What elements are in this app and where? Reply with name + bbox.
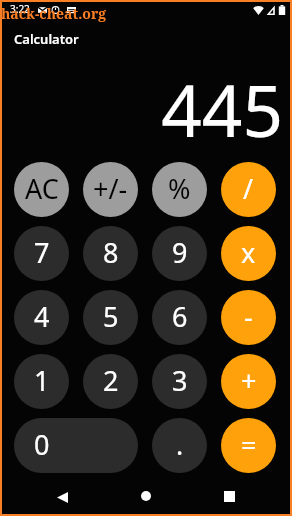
- button[interactable]: /: [221, 162, 276, 217]
- button[interactable]: Home: [130, 480, 162, 512]
- staticText: 6: [172, 298, 188, 335]
- button[interactable]: +/-: [83, 162, 138, 217]
- staticText: x: [241, 234, 256, 271]
- staticText: 4: [34, 298, 50, 335]
- button[interactable]: Back: [46, 481, 78, 513]
- staticText: 0: [34, 426, 50, 463]
- button[interactable]: 0: [14, 418, 138, 473]
- button[interactable]: 5: [83, 290, 138, 345]
- staticText: %: [168, 170, 191, 207]
- staticText: +/-: [93, 170, 128, 207]
- staticText: AC: [25, 170, 59, 207]
- button[interactable]: %: [152, 162, 207, 217]
- staticText: 3:22: [10, 2, 30, 16]
- staticText: 445: [161, 61, 283, 158]
- button[interactable]: 3: [152, 354, 207, 409]
- staticText: 1: [34, 362, 50, 399]
- button[interactable]: 8: [83, 226, 138, 281]
- staticText: =: [241, 426, 257, 463]
- staticText: 7: [34, 234, 50, 271]
- button[interactable]: 9: [152, 226, 207, 281]
- button[interactable]: Recent apps: [213, 480, 245, 512]
- staticText: 5: [103, 298, 119, 335]
- button[interactable]: 4: [14, 290, 69, 345]
- staticText: 9: [172, 234, 188, 271]
- staticText: 3: [172, 362, 188, 399]
- button[interactable]: AC: [14, 162, 69, 217]
- button[interactable]: x: [221, 226, 276, 281]
- staticText: hack-cheat.org: [1, 4, 107, 23]
- staticText: +: [241, 362, 257, 399]
- button[interactable]: 2: [83, 354, 138, 409]
- staticText: .: [176, 426, 184, 463]
- staticText: 2: [103, 362, 119, 399]
- staticText: Calculator: [14, 30, 79, 48]
- staticText: -: [244, 298, 253, 335]
- button[interactable]: 1: [14, 354, 69, 409]
- button[interactable]: 7: [14, 226, 69, 281]
- button[interactable]: +: [221, 354, 276, 409]
- staticText: /: [243, 170, 254, 207]
- staticText: 8: [103, 234, 119, 271]
- button[interactable]: -: [221, 290, 276, 345]
- button[interactable]: .: [152, 418, 207, 473]
- button[interactable]: =: [221, 418, 276, 473]
- button[interactable]: 6: [152, 290, 207, 345]
